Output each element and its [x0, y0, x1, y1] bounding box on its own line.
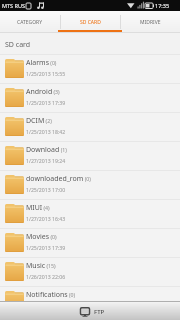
button[interactable]: Movies (0): [0, 229, 180, 258]
staticText: MIDRIVE: [140, 19, 161, 26]
staticText: 1/27/2013 16:43: [26, 215, 66, 222]
staticText: 1/25/2013 17:39: [26, 244, 66, 251]
staticText: 1/27/2013 19:24: [26, 157, 66, 164]
button[interactable]: MIUI (4): [0, 200, 180, 229]
staticText: FTP: [94, 308, 105, 316]
staticText: Notifications (0): [26, 290, 76, 300]
staticText: 1/25/2013 17:39: [26, 99, 66, 106]
staticText: 1/25/2013 17:00: [26, 186, 66, 193]
button[interactable]: Android (3): [0, 84, 180, 113]
staticText: 1/25/2013 18:42: [26, 128, 66, 135]
staticText: 1/26/2013 22:06: [26, 273, 66, 280]
staticText: DCIM (2): [26, 116, 52, 126]
button[interactable]: FTP: [80, 307, 105, 317]
staticText: downloaded_rom (0): [26, 174, 91, 184]
staticText: MTS RUS: [2, 2, 25, 9]
button[interactable]: Download (1): [0, 142, 180, 171]
staticText: Android (3): [26, 87, 60, 97]
button[interactable]: CATEGORY: [0, 11, 60, 33]
staticText: 17:35: [155, 2, 170, 9]
button[interactable]: MIDRIVE: [120, 11, 180, 33]
staticText: Download (1): [26, 145, 67, 155]
button[interactable]: Notifications (0): [0, 287, 180, 316]
staticText: SD card: [5, 40, 31, 50]
staticText: CATEGORY: [17, 19, 43, 26]
staticText: SD CARD: [80, 19, 101, 26]
button[interactable]: DCIM (2): [0, 113, 180, 142]
staticText: Alarms (0): [26, 58, 57, 68]
button[interactable]: downloaded_rom (0): [0, 171, 180, 200]
button[interactable]: Music (15): [0, 258, 180, 287]
staticText: MIUI (4): [26, 203, 50, 213]
staticText: 1/25/2013 15:55: [26, 302, 66, 309]
button[interactable]: Alarms (0): [0, 55, 180, 84]
staticText: Movies (0): [26, 232, 57, 242]
button[interactable]: SD CARD: [60, 11, 120, 33]
staticText: Music (15): [26, 261, 56, 271]
staticText: 1/25/2013 15:55: [26, 70, 66, 77]
